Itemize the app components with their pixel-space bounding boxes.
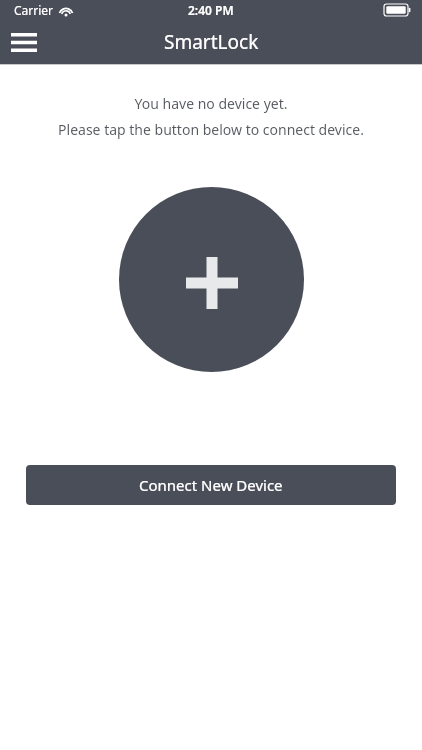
staticText: Please tap the button below to connect d… — [0, 120, 422, 139]
button[interactable]: Open navigation menu — [0, 20, 48, 64]
staticText: SmartLock — [164, 29, 259, 55]
button[interactable]: Add new device — [119, 187, 304, 372]
staticText: Carrier — [14, 2, 54, 18]
staticText: 2:40 PM — [188, 2, 234, 18]
button[interactable]: Connect New Device — [26, 465, 396, 505]
staticText: Connect New Device — [139, 475, 283, 495]
staticText: You have no device yet. — [0, 94, 422, 113]
